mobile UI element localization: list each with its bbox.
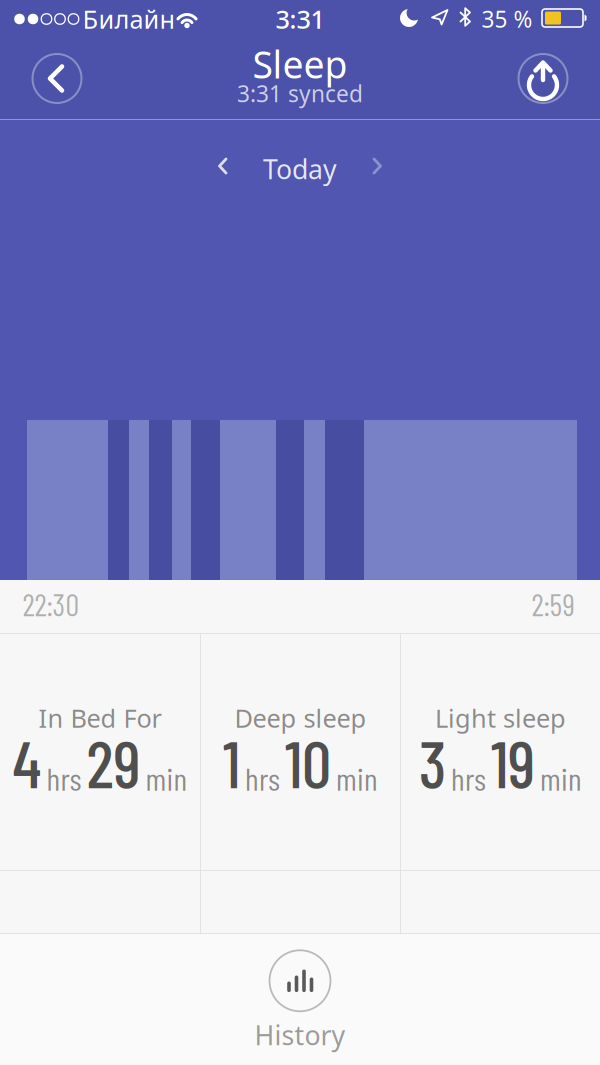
staticText: 3 [419,723,446,801]
staticText: hrs [451,759,486,797]
staticText: hrs [46,759,81,797]
staticText: min [145,759,187,797]
staticText: 2:59 [531,586,574,622]
staticText: 3:31 [275,2,324,36]
staticText: 29 [86,723,140,801]
staticText: 19 [491,723,535,801]
staticText: Билайн [82,2,175,36]
staticText: 4 [12,723,41,801]
button[interactable]: Previous day [218,158,227,174]
staticText: In Bed For [38,701,161,735]
button[interactable]: Next day [372,158,381,174]
staticText: Light sleep [435,701,566,735]
staticText: Today [263,151,337,187]
staticText: min [540,759,582,797]
staticText: 35 % [481,4,532,34]
button[interactable]: History [254,950,345,1053]
button[interactable]: Back [32,54,81,103]
staticText: Sleep [252,39,347,89]
staticText: hrs [245,759,280,797]
staticText: Deep sleep [234,701,366,735]
staticText: 3:31 synced [237,78,363,108]
staticText: 22:30 [22,586,79,622]
staticText: min [336,759,378,797]
staticText: History [254,1017,345,1053]
button[interactable]: Share [518,54,567,103]
staticText: 1 [223,723,240,801]
staticText: 10 [285,723,331,801]
